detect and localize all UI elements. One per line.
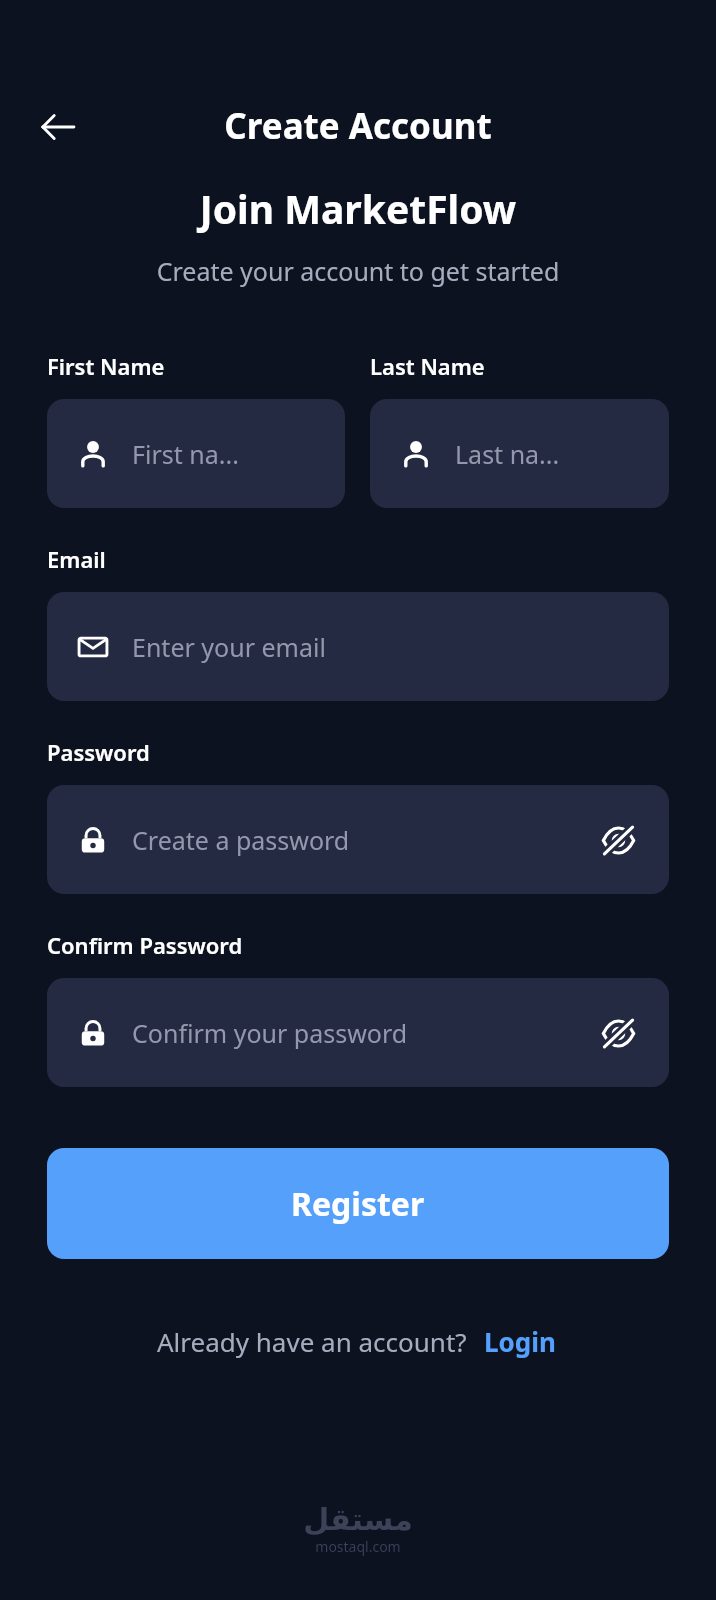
staticText: Create a password xyxy=(132,823,587,857)
button[interactable]: Email xyxy=(47,592,669,701)
staticText: Create Account xyxy=(0,102,716,150)
staticText: مستقل xyxy=(303,1502,413,1537)
button[interactable]: Login xyxy=(481,1321,559,1362)
button[interactable]: Show password xyxy=(593,815,643,865)
staticText: Last na... xyxy=(455,437,643,471)
button[interactable]: Back xyxy=(20,89,96,165)
staticText: Create your account to get started xyxy=(0,254,716,288)
staticText: Last Name xyxy=(370,351,485,381)
staticText: Confirm your password xyxy=(132,1016,587,1050)
staticText: Register xyxy=(291,1182,425,1226)
staticText: Enter your email xyxy=(132,630,643,664)
staticText: First Name xyxy=(47,351,165,381)
staticText: First na... xyxy=(132,437,319,471)
button[interactable]: Last name xyxy=(370,399,669,508)
staticText: Join MarketFlow xyxy=(0,182,716,235)
staticText: Login xyxy=(484,1324,556,1359)
button[interactable]: Show confirm password xyxy=(593,1008,643,1058)
staticText: Password xyxy=(47,737,150,767)
button[interactable]: Password xyxy=(47,785,669,894)
button[interactable]: First name xyxy=(47,399,345,508)
staticText: mostaql.com xyxy=(315,1537,401,1556)
button[interactable]: Confirm password xyxy=(47,978,669,1087)
staticText: Email xyxy=(47,544,106,574)
staticText: Confirm Password xyxy=(47,930,243,960)
staticText: Already have an account? xyxy=(157,1324,467,1359)
button[interactable]: Register xyxy=(47,1148,669,1259)
